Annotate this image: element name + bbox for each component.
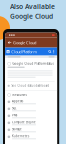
button[interactable]: Google Cloud bbox=[5, 38, 57, 48]
staticText: See Cloud status dashboard bbox=[11, 84, 49, 87]
button[interactable]: Resources bbox=[5, 93, 57, 97]
staticText: Appears bbox=[12, 99, 23, 103]
button[interactable]: Google Cloud Platform status bbox=[5, 62, 57, 78]
button[interactable]: Appears bbox=[5, 98, 57, 105]
button[interactable]: Compute Engine bbox=[5, 119, 57, 126]
button[interactable]: VMs bbox=[5, 112, 57, 119]
staticText: SQL bbox=[12, 106, 16, 110]
button[interactable]: SQL bbox=[5, 105, 57, 112]
button[interactable]: Storage bbox=[5, 126, 57, 133]
staticText: Google Cloud bbox=[13, 40, 36, 45]
staticText: G bbox=[7, 50, 9, 53]
staticText: Kubernetes bbox=[12, 134, 29, 138]
staticText: Cloud Platform bbox=[11, 49, 37, 54]
button[interactable]: See Cloud status dashboard bbox=[5, 84, 57, 87]
staticText: Google Cloud Platform status bbox=[12, 62, 53, 65]
staticText: Google Cloud bbox=[10, 12, 53, 21]
button[interactable]: Kubernetes bbox=[5, 133, 57, 140]
staticText: Storage bbox=[12, 127, 22, 131]
staticText: Compute Engine bbox=[12, 120, 36, 124]
staticText: Resources bbox=[12, 93, 26, 97]
staticText: VMs bbox=[12, 113, 17, 117]
staticText: Also Available bbox=[10, 2, 55, 11]
